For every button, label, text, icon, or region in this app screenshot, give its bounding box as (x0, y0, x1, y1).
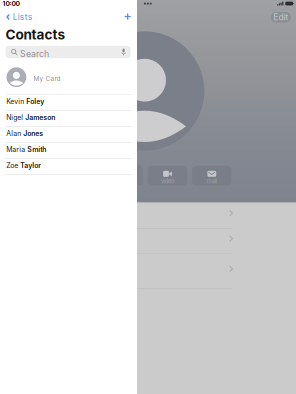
button[interactable]: My Card (0, 63, 137, 95)
button[interactable]: Search (6, 46, 130, 58)
staticText: Maria (6, 145, 27, 154)
button[interactable]: Edit (271, 12, 291, 23)
staticText: Lists (13, 12, 33, 22)
staticText: Nigel (6, 113, 25, 122)
staticText: mail (207, 178, 217, 184)
button[interactable]: More (141, 0, 155, 8)
staticText: Smith (27, 145, 46, 154)
staticText: Kevin (6, 97, 26, 106)
staticText: Edit (273, 12, 288, 22)
button[interactable]: Kevin (0, 95, 137, 111)
button[interactable]: mail (192, 166, 231, 186)
staticText: 10:00 (3, 0, 20, 8)
button[interactable]: video (148, 166, 187, 186)
button[interactable]: Lists (6, 11, 46, 23)
staticText: Jameson (25, 113, 55, 122)
staticText: Taylor (20, 161, 41, 170)
staticText: Contacts (6, 26, 66, 43)
button[interactable]: Nigel (0, 111, 137, 127)
button[interactable]: Maria (0, 143, 137, 159)
button[interactable]: message (103, 166, 143, 186)
staticText: Alan (6, 129, 23, 138)
staticText: Jones (23, 129, 43, 138)
staticText: Zoe (6, 161, 20, 170)
staticText: My Card (33, 75, 60, 82)
staticText: Search (20, 48, 49, 59)
staticText: Foley (26, 97, 44, 106)
staticText: video (161, 178, 174, 184)
button[interactable]: Zoe (0, 159, 137, 175)
button[interactable]: Add contact (119, 10, 137, 26)
button[interactable]: Alan (0, 127, 137, 143)
